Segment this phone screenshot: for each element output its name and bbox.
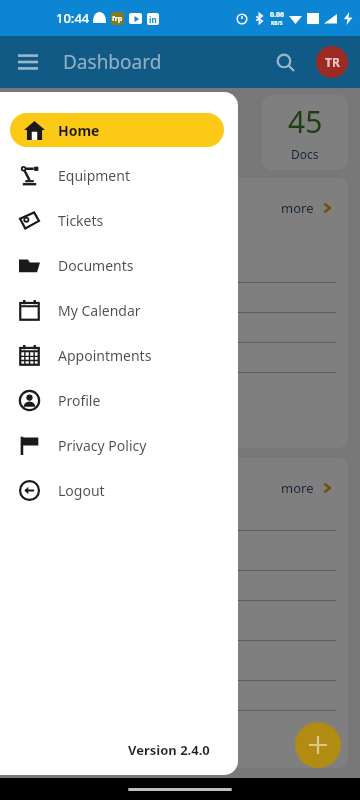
button[interactable]: Open navigation menu <box>10 44 46 80</box>
staticText: in <box>149 14 157 25</box>
button[interactable]: My Calendar <box>0 288 238 332</box>
staticText: 0.06 <box>270 10 284 20</box>
button[interactable]: Privacy Policy <box>0 423 238 467</box>
staticText: Logout <box>58 481 105 500</box>
staticText: Documents <box>58 256 134 275</box>
button[interactable]: Logout <box>0 468 238 512</box>
button[interactable]: Appointments <box>0 333 238 377</box>
button[interactable]: Equipment <box>0 153 238 197</box>
staticText: KB/S <box>271 20 283 27</box>
staticText: more <box>281 479 314 497</box>
staticText: frp <box>112 14 123 24</box>
button[interactable]: Tickets <box>0 198 238 242</box>
staticText: TR <box>325 54 340 70</box>
staticText: My Calendar <box>58 301 141 320</box>
button[interactable]: Add <box>295 722 341 768</box>
staticText: 10:44 <box>56 9 90 27</box>
staticText: Appointments <box>58 346 152 365</box>
staticText: Version 2.4.0 <box>128 741 210 759</box>
staticText: Due to <box>153 146 191 162</box>
staticText: Home <box>58 121 100 140</box>
staticText: Profile <box>58 391 101 410</box>
button[interactable]: TR <box>316 46 348 78</box>
staticText: Dashboard <box>63 49 162 75</box>
button[interactable]: Search <box>268 45 302 79</box>
button[interactable]: 6 <box>116 95 228 170</box>
staticText: 45 <box>288 101 323 142</box>
button[interactable]: more <box>281 479 334 497</box>
button[interactable]: more <box>281 199 334 217</box>
staticText: 6 <box>163 101 181 142</box>
staticText: Tickets <box>58 211 104 230</box>
staticText: more <box>281 199 314 217</box>
staticText: Docs <box>291 146 319 162</box>
button[interactable]: 45 <box>262 95 348 170</box>
button[interactable]: Home <box>10 113 224 147</box>
staticText: Privacy Policy <box>58 436 147 455</box>
staticText: Equipment <box>58 166 130 185</box>
button[interactable]: Documents <box>0 243 238 287</box>
button[interactable]: Profile <box>0 378 238 422</box>
